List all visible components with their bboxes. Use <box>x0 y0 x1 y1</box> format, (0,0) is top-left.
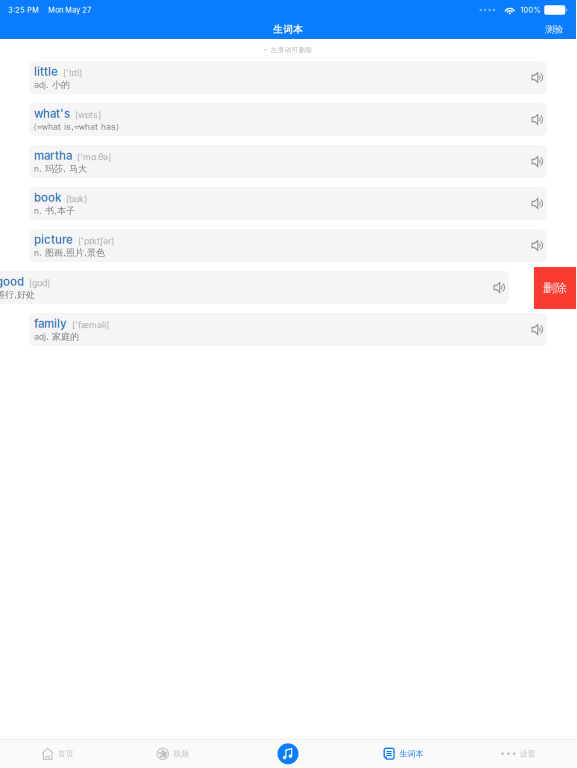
staticText: n. 图画,照片,景色 <box>34 247 105 258</box>
staticText: good <box>0 275 24 288</box>
button[interactable]: 删除 <box>534 267 576 309</box>
staticText: Mon May 27 <box>48 6 91 14</box>
staticText: (=what is,=what has) <box>34 121 119 132</box>
button[interactable]: 首页 <box>0 740 115 768</box>
staticText: 生词本 <box>399 749 423 759</box>
staticText: 善行,好处 <box>0 289 35 300</box>
button[interactable]: Play music <box>230 740 346 768</box>
staticText: ['fæməli] <box>72 320 109 330</box>
staticText: book <box>34 191 61 204</box>
button[interactable]: 设置 <box>461 740 576 768</box>
staticText: picture <box>34 233 73 246</box>
staticText: [bʊk] <box>66 194 87 204</box>
button[interactable]: 生词本 <box>346 740 461 768</box>
staticText: martha <box>34 149 72 162</box>
staticText: n. 书,本子 <box>34 205 75 216</box>
button[interactable]: family <box>29 313 547 346</box>
staticText: adj. 小的 <box>34 79 70 90</box>
staticText: n. 玛莎, 马大 <box>34 163 87 174</box>
button[interactable]: martha <box>29 145 547 178</box>
button[interactable]: good <box>0 271 509 304</box>
staticText: ['pɪktʃər] <box>78 236 114 246</box>
staticText: 3:25 PM <box>8 6 39 14</box>
staticText: ['lɪtl] <box>63 68 82 78</box>
button[interactable]: little <box>29 61 547 94</box>
staticText: ←左滑动可删除 <box>263 46 312 54</box>
staticText: [gʊd] <box>29 278 50 288</box>
staticText: family <box>34 317 67 330</box>
button[interactable]: what's <box>29 103 547 136</box>
staticText: 删除 <box>543 280 567 295</box>
staticText: 100% <box>520 6 540 14</box>
staticText: 视频 <box>173 749 189 759</box>
button[interactable]: book <box>29 187 547 220</box>
staticText: 测验 <box>545 24 563 35</box>
staticText: what's <box>34 107 70 120</box>
button[interactable]: picture <box>29 229 547 262</box>
staticText: adj. 家庭的 <box>34 331 79 342</box>
staticText: [wɒts] <box>75 110 101 120</box>
staticText: 设置 <box>519 749 535 759</box>
staticText: ['mɑːθə] <box>77 152 111 162</box>
staticText: little <box>34 65 58 78</box>
button[interactable]: 视频 <box>115 740 230 768</box>
button[interactable]: 测验 <box>532 20 576 39</box>
staticText: 生词本 <box>273 23 303 36</box>
staticText: 首页 <box>58 749 74 759</box>
